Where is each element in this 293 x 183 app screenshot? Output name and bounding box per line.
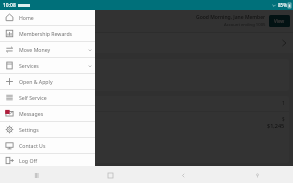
staticText: Membership Rewards <box>19 30 73 37</box>
button[interactable]: Services <box>0 58 95 73</box>
staticText: Home <box>19 14 34 21</box>
button[interactable]: Log Off <box>0 154 95 166</box>
button[interactable]: View <box>269 15 290 27</box>
button[interactable]: Move Money <box>0 42 95 57</box>
staticText: Settings <box>19 126 39 133</box>
button[interactable] <box>4 59 289 91</box>
staticText: $1,245 <box>267 122 285 129</box>
staticText: Contact Us <box>19 142 46 149</box>
staticText: Check our upcoming limits and alerts <box>4 40 95 47</box>
staticText: $ <box>282 116 285 122</box>
button[interactable]: Home <box>0 10 95 25</box>
button[interactable]: Close navigation drawer <box>95 10 293 166</box>
button[interactable]: Back <box>177 169 189 181</box>
button[interactable]: Recent apps <box>30 169 42 181</box>
button[interactable]: 1 <box>4 96 289 111</box>
staticText: View <box>274 18 285 24</box>
button[interactable]: Screenshot <box>251 169 263 181</box>
button[interactable]: Self Service <box>0 90 95 105</box>
button[interactable]: Membership Rewards <box>0 26 95 41</box>
staticText: 85% <box>278 2 287 8</box>
staticText: Good Morning, Jane Member <box>196 14 266 21</box>
staticText: Services <box>19 62 39 69</box>
button[interactable]: Check our upcoming limits and alerts <box>0 33 293 53</box>
staticText: 10:08 <box>3 2 16 9</box>
staticText: Move Money <box>19 46 51 53</box>
button[interactable]: Home <box>104 169 116 181</box>
button[interactable]: $ <box>4 112 289 133</box>
button[interactable]: Open & Apply <box>0 74 95 89</box>
staticText: Messages <box>19 110 44 117</box>
button[interactable]: Contact Us <box>0 138 95 153</box>
staticText: Account ending 1005 <box>224 22 266 28</box>
staticText: Self Service <box>19 94 47 101</box>
staticText: Open & Apply <box>19 78 53 85</box>
staticText: Log Off <box>19 157 38 164</box>
staticText: 1 <box>282 100 285 107</box>
button[interactable]: Settings <box>0 122 95 137</box>
button[interactable]: Messages <box>0 106 95 121</box>
